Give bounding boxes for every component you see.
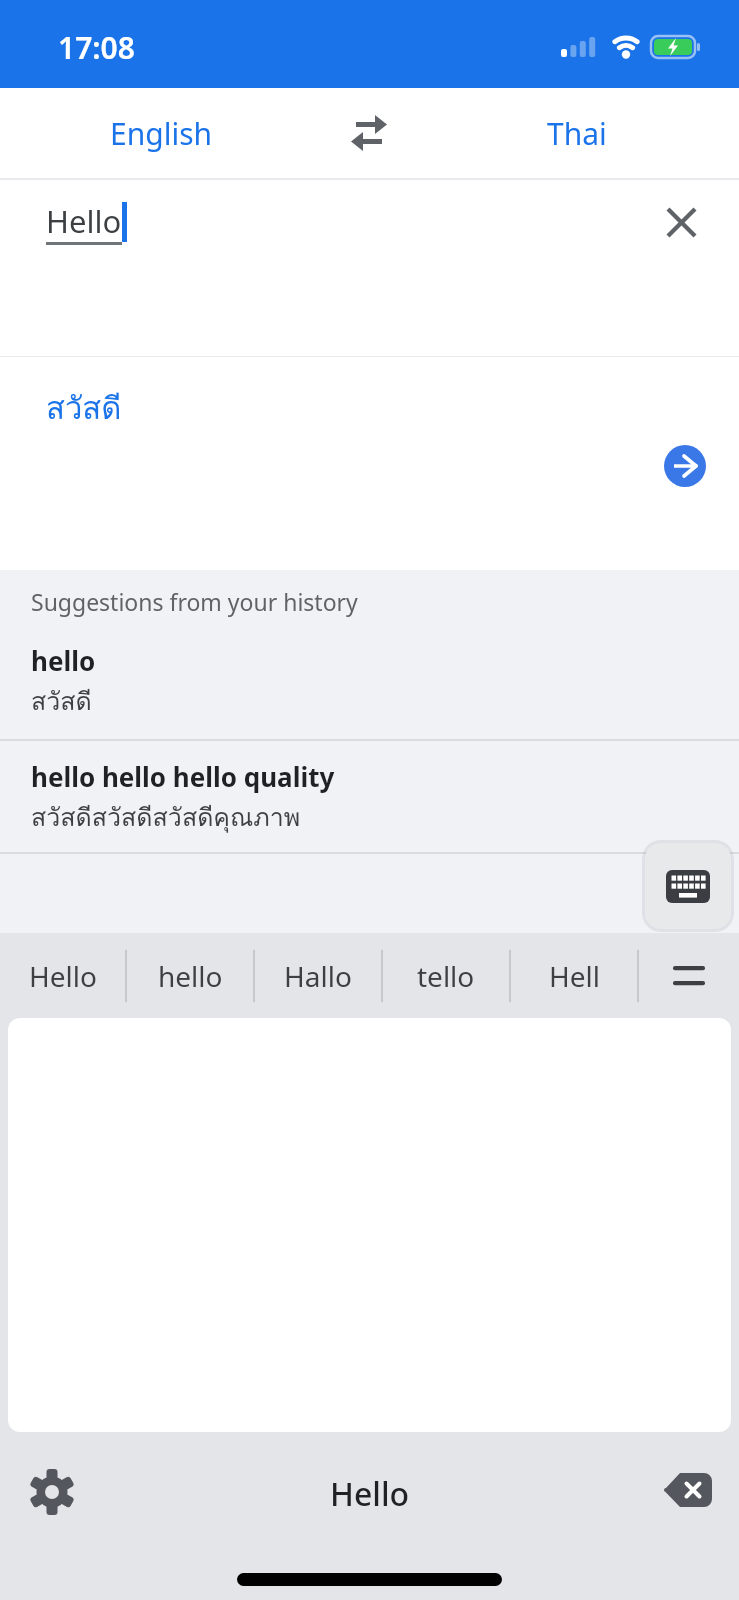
- button[interactable]: hello: [0, 617, 739, 721]
- staticText: English: [110, 113, 213, 154]
- button[interactable]: Thai: [415, 88, 739, 178]
- staticText: สวัสดี: [31, 681, 92, 721]
- staticText: Hallo: [284, 957, 352, 995]
- staticText: สวัสดี: [46, 383, 122, 432]
- staticText: Hello: [29, 957, 97, 995]
- button[interactable]: [663, 1472, 713, 1508]
- staticText: Hello: [330, 1472, 410, 1516]
- staticText: Hell: [549, 957, 600, 995]
- staticText: hello: [158, 957, 223, 995]
- button[interactable]: [639, 933, 739, 1018]
- staticText: สวัสดีสวัสดีสวัสดีคุณภาพ: [31, 797, 301, 837]
- button[interactable]: [659, 200, 703, 244]
- staticText: tello: [417, 957, 475, 995]
- button[interactable]: tello: [383, 933, 509, 1018]
- button[interactable]: Hell: [511, 933, 637, 1018]
- staticText: Hello: [46, 200, 122, 242]
- button[interactable]: Hallo: [255, 933, 381, 1018]
- staticText: hello: [31, 643, 96, 678]
- button[interactable]: [323, 88, 415, 178]
- button[interactable]: Hello: [0, 933, 125, 1018]
- button[interactable]: [645, 843, 731, 929]
- button[interactable]: hello: [127, 933, 253, 1018]
- staticText: hello hello hello quality: [31, 759, 335, 794]
- button[interactable]: [664, 445, 706, 487]
- staticText: 17:08: [58, 27, 135, 68]
- button[interactable]: [28, 1468, 76, 1516]
- button[interactable]: hello hello hello quality: [0, 741, 739, 837]
- staticText: Suggestions from your history: [31, 586, 358, 617]
- staticText: Thai: [547, 113, 607, 154]
- button[interactable]: English: [0, 88, 323, 178]
